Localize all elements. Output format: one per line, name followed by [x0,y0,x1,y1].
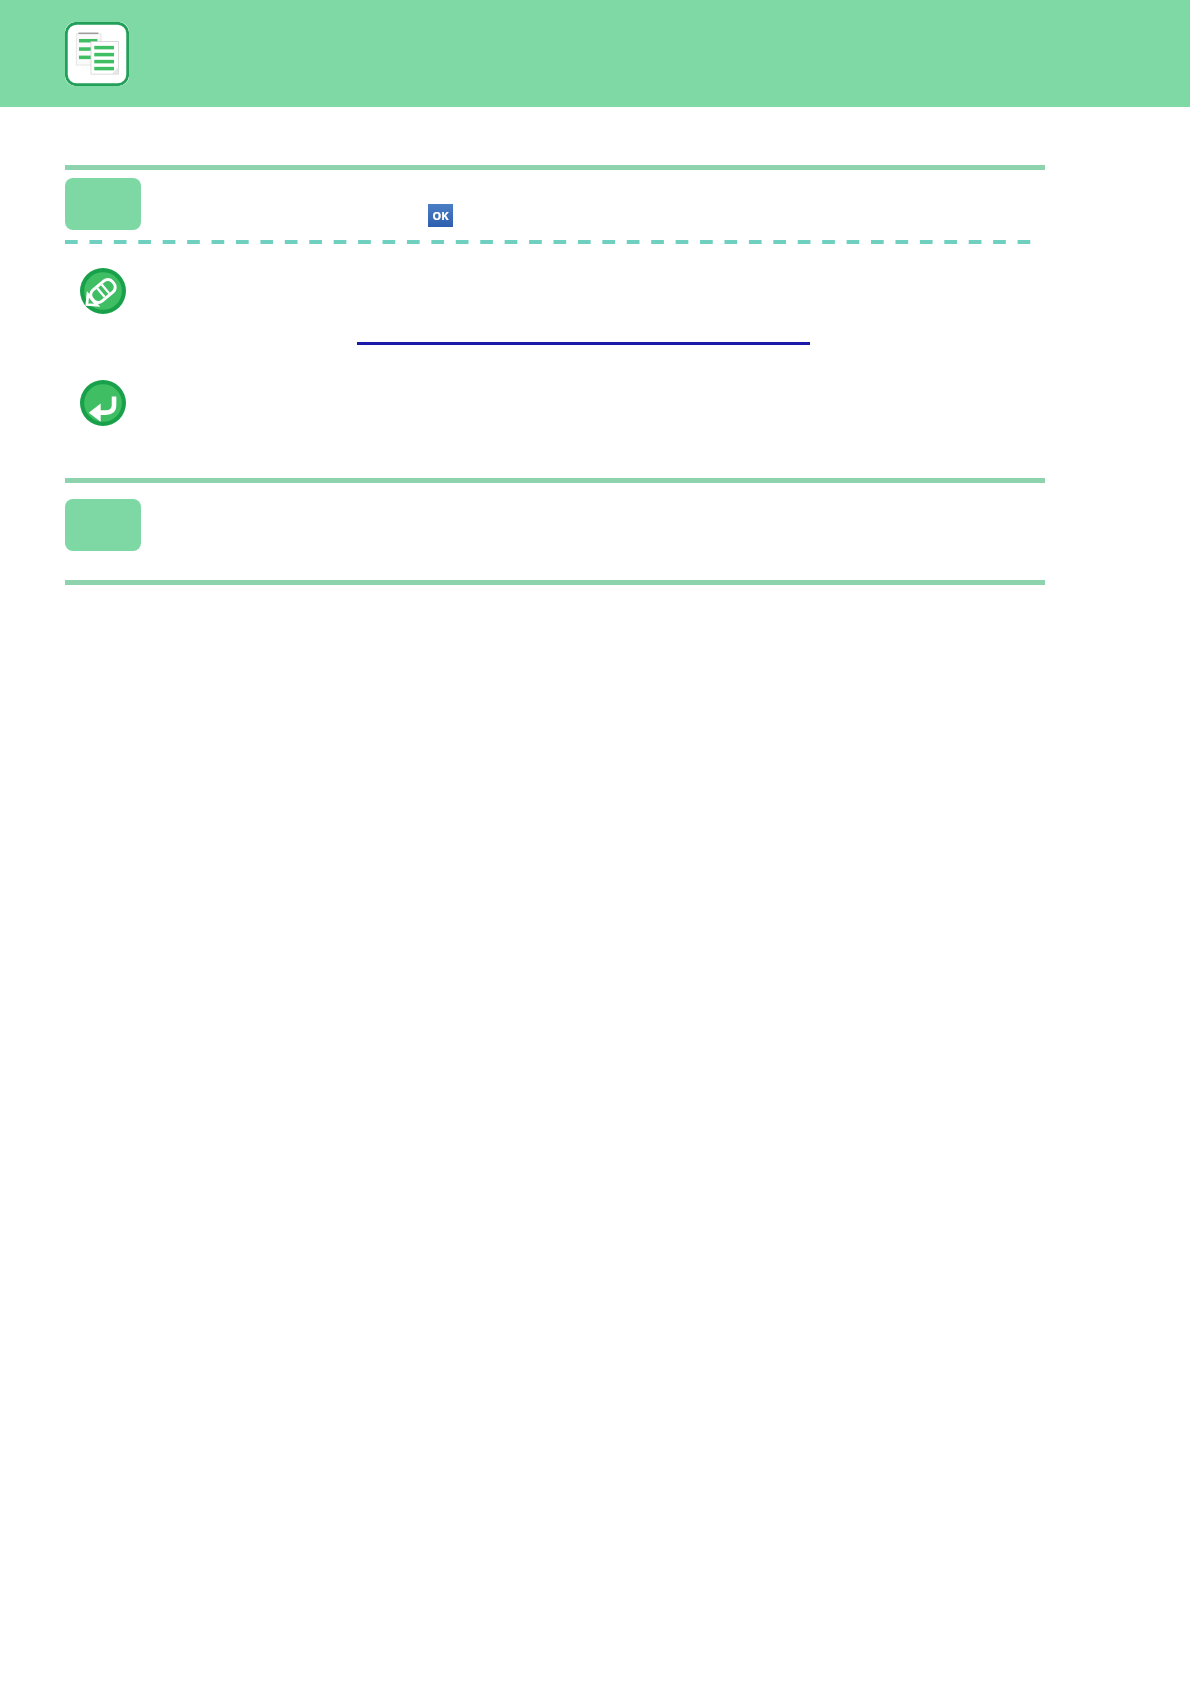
button[interactable]: Note [80,268,126,314]
button[interactable]: OK [428,204,453,227]
button[interactable]: Step 1 [65,178,141,230]
staticText: OK [432,208,449,223]
button[interactable]: Copy document [65,22,129,86]
button[interactable]: Step 2 [65,499,141,551]
button[interactable]: Back [80,380,126,426]
